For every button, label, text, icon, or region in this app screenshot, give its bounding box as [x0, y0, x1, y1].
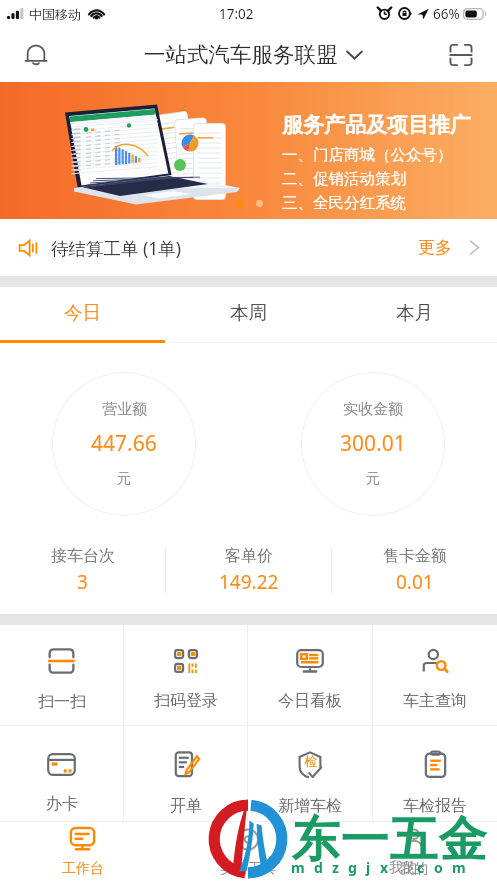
staticText: 本周: [230, 301, 267, 324]
staticText: 本月: [396, 301, 433, 324]
button[interactable]: 营业额: [52, 372, 196, 516]
staticText: 0.01: [396, 569, 434, 595]
staticText: g: [348, 858, 357, 877]
staticText: 今日: [64, 301, 101, 324]
button[interactable]: 开单: [124, 726, 247, 821]
staticText: 检: [304, 753, 317, 769]
staticText: 中国移动: [29, 6, 81, 22]
staticText: d: [314, 858, 323, 877]
button[interactable]: Scan: [439, 33, 483, 77]
staticText: 开单: [170, 796, 202, 816]
button[interactable]: 实用工具: [165, 822, 331, 883]
staticText: 三、全民分红系统: [282, 193, 406, 213]
button[interactable]: 我的: [331, 822, 497, 883]
staticText: 服务产品及项目推广: [282, 112, 471, 138]
button[interactable]: 扫一扫: [0, 625, 123, 725]
button[interactable]: 车检报告: [373, 726, 497, 821]
staticText: 今日看板: [278, 691, 342, 711]
button[interactable]: 接车台次: [0, 534, 165, 614]
staticText: 一站式汽车服务联盟: [144, 41, 338, 68]
staticText: 元: [366, 470, 380, 488]
staticText: 新增车检: [278, 796, 342, 816]
staticText: c: [417, 858, 425, 877]
button[interactable]: 售卡金额: [332, 534, 497, 614]
staticText: 元: [117, 470, 131, 488]
staticText: 扫一扫: [38, 692, 86, 712]
staticText: 一、门店商城（公众号）: [282, 145, 453, 165]
staticText: 售卡金额: [383, 546, 447, 566]
staticText: 待结算工单 (1单): [51, 236, 182, 260]
button[interactable]: 车主查询: [373, 625, 497, 725]
button[interactable]: 一站式汽车服务联盟: [135, 41, 363, 68]
staticText: o: [434, 858, 443, 877]
button[interactable]: 客单价: [166, 534, 331, 614]
staticText: 工作台: [62, 860, 104, 878]
staticText: 二、促销活动策划: [282, 169, 406, 189]
button[interactable]: 检: [248, 726, 372, 821]
staticText: 3: [77, 569, 88, 595]
staticText: 17:02: [219, 5, 254, 23]
button[interactable]: 今日看板: [248, 625, 372, 725]
button[interactable]: 待结算工单 (1单): [0, 219, 497, 276]
staticText: m: [452, 858, 466, 877]
staticText: 实用工具: [220, 860, 276, 878]
staticText: 66%: [433, 5, 460, 23]
button[interactable]: 服务产品及项目推广: [0, 82, 497, 219]
staticText: 447.66: [91, 429, 157, 458]
staticText: 300.01: [340, 429, 406, 458]
button[interactable]: 办卡: [0, 726, 123, 821]
staticText: 我的: [400, 860, 428, 878]
staticText: 东一五金: [291, 810, 487, 870]
staticText: 营业额: [102, 400, 147, 419]
staticText: 更多: [418, 237, 452, 258]
staticText: 办卡: [46, 794, 78, 814]
button[interactable]: 实收金额: [301, 372, 445, 516]
staticText: 扫码登录: [154, 691, 218, 711]
button[interactable]: Notifications: [14, 33, 58, 77]
staticText: 149.22: [219, 569, 279, 595]
staticText: z: [332, 858, 339, 877]
staticText: 车检报告: [403, 796, 467, 816]
staticText: m: [291, 858, 305, 877]
staticText: 实收金额: [343, 400, 403, 419]
button[interactable]: 扫码登录: [124, 625, 247, 725]
staticText: 接车台次: [51, 546, 115, 566]
button[interactable]: 今日: [0, 287, 165, 343]
button[interactable]: 本周: [165, 287, 331, 343]
staticText: 客单价: [225, 546, 273, 566]
staticText: x: [380, 858, 389, 877]
button[interactable]: 工作台: [0, 822, 165, 883]
staticText: j: [366, 858, 371, 877]
staticText: 我的: [389, 859, 417, 877]
staticText: 车主查询: [403, 691, 467, 711]
button[interactable]: 本月: [331, 287, 497, 343]
